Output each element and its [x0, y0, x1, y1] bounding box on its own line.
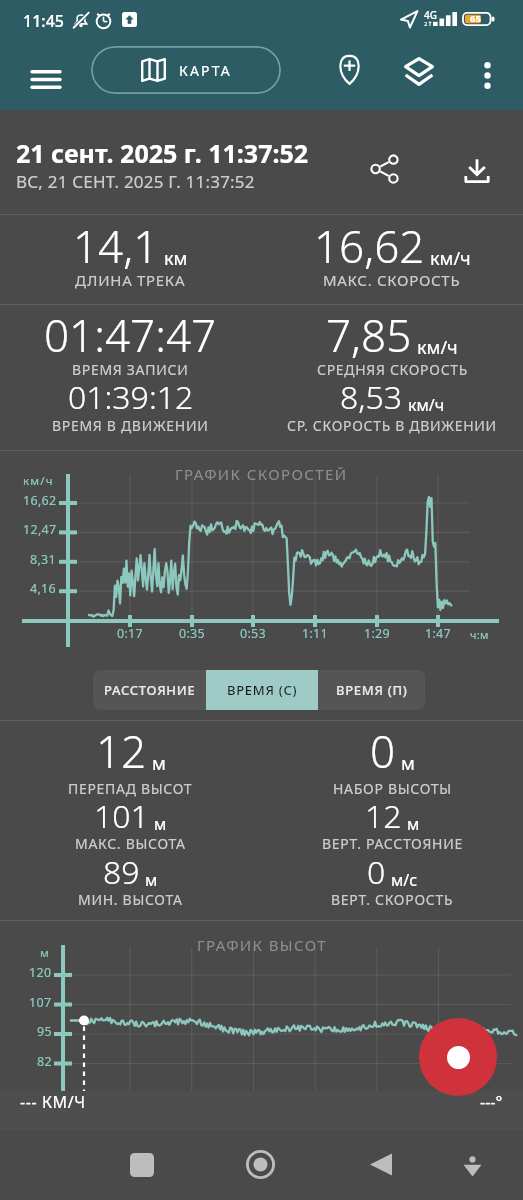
staticText: км/ч: [23, 473, 54, 489]
staticText: км/ч: [430, 246, 471, 271]
staticText: 0: [370, 721, 396, 781]
staticText: м: [40, 945, 49, 961]
staticText: м: [401, 751, 415, 776]
staticText: 120: [29, 964, 52, 981]
staticText: 01:47:47: [44, 305, 217, 365]
staticText: м: [407, 813, 420, 835]
button[interactable]: More options: [463, 51, 511, 99]
staticText: м: [145, 869, 158, 891]
staticText: 107: [29, 994, 52, 1011]
staticText: 14,1: [73, 216, 159, 276]
staticText: 12: [96, 721, 147, 781]
staticText: ВРЕМЯ В ДВИЖЕНИИ: [52, 416, 209, 435]
staticText: РАССТОЯНИЕ: [104, 681, 196, 699]
button[interactable]: РАССТОЯНИЕ: [93, 670, 206, 710]
staticText: 0: [367, 850, 386, 894]
staticText: 4,16: [30, 580, 57, 597]
button[interactable]: Hide keyboard: [448, 1142, 496, 1190]
staticText: ПЕРЕПАД ВЫСОТ: [68, 779, 193, 798]
button[interactable]: КАРТА: [91, 46, 281, 94]
staticText: МАКС. СКОРОСТЬ: [323, 270, 461, 290]
button[interactable]: Home: [236, 1140, 284, 1188]
staticText: 0:35: [179, 625, 206, 642]
staticText: ч:м: [470, 627, 489, 642]
button[interactable]: Layers: [393, 45, 445, 97]
staticText: 95: [37, 1023, 52, 1040]
staticText: 01:39:12: [68, 375, 194, 419]
staticText: м: [154, 813, 167, 835]
button[interactable]: Add marker: [323, 44, 375, 96]
button[interactable]: Back: [357, 1140, 405, 1188]
staticText: 4G: [424, 8, 437, 22]
staticText: 11:45: [23, 10, 64, 32]
staticText: км/ч: [408, 394, 445, 416]
button[interactable]: Menu: [22, 55, 70, 103]
staticText: ГРАФИК СКОРОСТЕЙ: [175, 464, 348, 484]
button[interactable]: Record: [419, 1018, 497, 1096]
staticText: ВРЕМЯ (С): [227, 681, 298, 699]
staticText: ВРЕМЯ ЗАПИСИ: [72, 360, 189, 379]
staticText: СРЕДНЯЯ СКОРОСТЬ: [317, 360, 468, 379]
staticText: 101: [94, 794, 149, 838]
staticText: ВЕРТ. РАССТОЯНИЕ: [322, 834, 463, 853]
staticText: ВЕРТ. СКОРОСТЬ: [331, 890, 454, 909]
staticText: км/ч: [417, 335, 458, 360]
staticText: --- КМ/Ч: [20, 1091, 86, 1113]
staticText: 21 сент. 2025 г. 11:37:52: [16, 136, 309, 170]
staticText: 0:17: [117, 625, 144, 642]
staticText: СР. СКОРОСТЬ В ДВИЖЕНИИ: [287, 416, 497, 435]
staticText: м: [152, 751, 166, 776]
staticText: 8,31: [30, 551, 57, 568]
staticText: км: [164, 246, 188, 271]
button[interactable]: Recents: [118, 1141, 166, 1189]
staticText: МИН. ВЫСОТА: [78, 890, 183, 909]
staticText: 1:47: [425, 625, 452, 642]
button[interactable]: Share: [358, 143, 410, 195]
button[interactable]: ВРЕМЯ (С): [206, 670, 318, 710]
staticText: ДЛИНА ТРЕКА: [75, 270, 186, 290]
button[interactable]: ВРЕМЯ (П): [318, 670, 425, 710]
staticText: 89: [103, 850, 140, 894]
staticText: 12,47: [23, 521, 57, 538]
staticText: 7,85: [326, 305, 412, 365]
staticText: 12: [365, 794, 402, 838]
staticText: 1:11: [302, 625, 329, 642]
staticText: 16,62: [23, 492, 57, 509]
staticText: КАРТА: [179, 61, 232, 80]
staticText: ВРЕМЯ (П): [336, 681, 408, 699]
staticText: 8,53: [340, 375, 403, 419]
staticText: ВС, 21 СЕНТ. 2025 Г. 11:37:52: [16, 170, 255, 193]
button[interactable]: Download: [451, 144, 503, 196]
staticText: ---°: [480, 1091, 503, 1113]
staticText: НАБОР ВЫСОТЫ: [333, 779, 452, 798]
staticText: 65: [470, 12, 481, 25]
staticText: ГРАФИК ВЫСОТ: [197, 935, 327, 955]
staticText: м/с: [391, 869, 418, 891]
staticText: 16,62: [314, 216, 425, 276]
staticText: 0:53: [240, 625, 267, 642]
staticText: 1:29: [364, 625, 391, 642]
staticText: МАКС. ВЫСОТА: [75, 834, 186, 853]
staticText: 2↑: [424, 20, 433, 28]
staticText: 82: [37, 1053, 52, 1070]
